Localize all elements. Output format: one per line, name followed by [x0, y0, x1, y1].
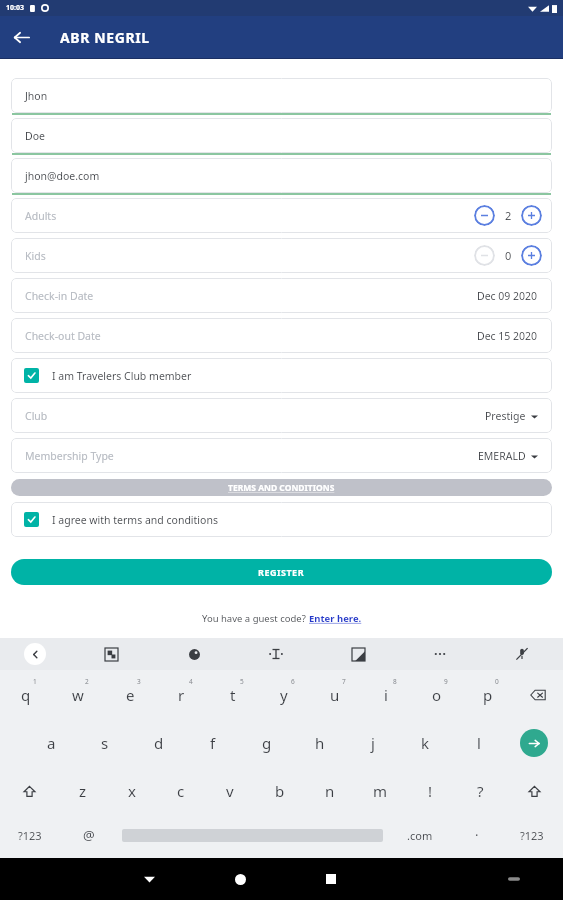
staticText: .com [407, 828, 433, 843]
button[interactable]: palette [153, 638, 235, 670]
button[interactable]: TERMS AND CONDITIONS [11, 479, 552, 496]
button[interactable]: g [240, 724, 293, 762]
button[interactable]: q [0, 676, 52, 714]
staticText: Doe [25, 129, 45, 143]
button[interactable]: Decrease Adults [474, 205, 495, 226]
button[interactable]: @ [60, 818, 118, 852]
staticText: 0 [505, 248, 512, 263]
button[interactable]: r [156, 676, 207, 714]
button[interactable]: Back [0, 16, 42, 58]
button[interactable]: mic [481, 638, 563, 670]
button[interactable]: Shift [505, 772, 563, 810]
button[interactable]: Backspace [513, 676, 563, 714]
button[interactable]: Doe [11, 118, 552, 153]
staticText: j [371, 733, 375, 753]
button[interactable]: s [78, 724, 132, 762]
button[interactable]: y [258, 676, 309, 714]
button[interactable]: I agree with terms and conditions [11, 502, 552, 537]
staticText: 5 [240, 677, 244, 686]
staticText: Adults [25, 209, 57, 223]
staticText: g [262, 733, 272, 753]
button[interactable]: c [156, 772, 205, 810]
button[interactable]: Kids [11, 238, 552, 273]
button[interactable]: .com [387, 818, 453, 852]
button[interactable]: cursor [235, 638, 317, 670]
button[interactable]: clip [317, 638, 399, 670]
button[interactable]: v [205, 772, 255, 810]
staticText: r [178, 685, 185, 705]
staticText: o [432, 685, 442, 705]
button[interactable]: w [52, 676, 104, 714]
staticText: ! [428, 781, 433, 801]
staticText: I am Travelers Club member [52, 369, 192, 383]
button[interactable]: Increase Adults [521, 205, 542, 226]
button[interactable]: Enter [505, 724, 563, 762]
staticText: q [21, 685, 31, 705]
button[interactable]: e [104, 676, 156, 714]
button[interactable]: d [132, 724, 186, 762]
button[interactable]: o [411, 676, 462, 714]
button[interactable]: x [107, 772, 156, 810]
staticText: b [275, 781, 285, 801]
button[interactable]: m [355, 772, 405, 810]
staticText: c [177, 781, 185, 801]
button[interactable]: Enter here. [309, 612, 362, 625]
staticText: ABR NEGRIL [60, 28, 150, 47]
button[interactable]: Decrease Kids [474, 245, 495, 266]
staticText: x [128, 781, 136, 801]
staticText: 0 [495, 677, 499, 686]
button[interactable]: · [453, 818, 501, 852]
button[interactable]: j [346, 724, 399, 762]
button[interactable]: Membership Type [11, 438, 552, 473]
staticText: jhon@doe.com [25, 169, 100, 183]
button[interactable]: Increase Kids [521, 245, 542, 266]
button[interactable]: dots [399, 638, 481, 670]
staticText: i [384, 685, 388, 705]
button[interactable]: Expand toolbar [0, 638, 70, 670]
button[interactable]: Keyboard [493, 858, 535, 900]
button[interactable]: I am Travelers Club member [11, 358, 552, 393]
staticText: h [315, 733, 325, 753]
button[interactable]: ?123 [501, 818, 563, 852]
button[interactable]: h [293, 724, 346, 762]
button[interactable]: jhon@doe.com [11, 158, 552, 193]
button[interactable]: Check-out Date [11, 318, 552, 353]
button[interactable]: f [186, 724, 240, 762]
button[interactable]: ! [405, 772, 455, 810]
staticText: 1 [33, 677, 37, 686]
staticText: d [154, 733, 164, 753]
button[interactable]: b [255, 772, 305, 810]
button[interactable]: sticker [70, 638, 153, 670]
staticText: 2 [505, 208, 512, 223]
button[interactable]: a [24, 724, 78, 762]
staticText: 7 [342, 677, 346, 686]
button[interactable]: REGISTER [11, 559, 552, 585]
button[interactable]: Jhon [11, 78, 552, 113]
button[interactable]: Recents [310, 858, 352, 900]
staticText: Kids [25, 249, 46, 263]
button[interactable]: p [462, 676, 513, 714]
button[interactable]: z [58, 772, 107, 810]
staticText: Dec 09 2020 [477, 289, 538, 303]
button[interactable]: Check-in Date [11, 278, 552, 313]
button[interactable]: Back [128, 858, 170, 900]
button[interactable]: ? [455, 772, 505, 810]
button[interactable]: u [309, 676, 360, 714]
button[interactable]: i [360, 676, 411, 714]
button[interactable]: t [207, 676, 258, 714]
button[interactable]: Space [122, 818, 383, 852]
staticText: TERMS AND CONDITIONS [228, 482, 335, 494]
button[interactable]: l [452, 724, 505, 762]
button[interactable]: k [399, 724, 452, 762]
button[interactable]: Adults [11, 198, 552, 233]
button[interactable]: Club [11, 398, 552, 433]
staticText: 8 [393, 677, 397, 686]
button[interactable]: Home [219, 858, 261, 900]
button[interactable]: n [305, 772, 355, 810]
staticText: ? [477, 781, 484, 801]
button[interactable]: ?123 [0, 818, 60, 852]
staticText: p [483, 685, 493, 705]
staticText: 10:03 [6, 3, 24, 13]
staticText: @ [83, 826, 95, 844]
button[interactable]: Shift [0, 772, 58, 810]
